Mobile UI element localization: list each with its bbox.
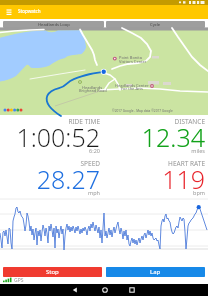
staticText: Headlands Center bbox=[115, 83, 149, 88]
staticText: HEART RATE bbox=[55, 159, 205, 168]
button[interactable]: Stop bbox=[3, 267, 102, 277]
button[interactable]: Back bbox=[70, 284, 80, 296]
button[interactable]: Headlands Loop bbox=[3, 21, 104, 28]
staticText: 6:20 bbox=[0, 147, 100, 154]
staticText: For the Arts bbox=[121, 86, 143, 91]
staticText: Cycle bbox=[150, 22, 161, 28]
staticText: 12.34 bbox=[55, 120, 205, 154]
staticText: Point Bonita bbox=[119, 55, 143, 60]
staticText: 1:00:52 bbox=[0, 120, 100, 154]
staticText: Headlands bbox=[82, 85, 103, 90]
button[interactable]: Home bbox=[100, 284, 110, 296]
staticText: ©2017 Google - Map data ©2017 Google bbox=[112, 109, 173, 113]
staticText: Visitors Center bbox=[119, 59, 147, 64]
staticText: Lap bbox=[150, 268, 161, 276]
staticText: 28.27 bbox=[0, 162, 100, 196]
button[interactable]: Cycle bbox=[106, 21, 205, 28]
button[interactable]: Navigation menu bbox=[5, 8, 13, 16]
staticText: Headlands Loop bbox=[38, 22, 70, 28]
staticText: RIDE TIME bbox=[0, 117, 100, 126]
staticText: mph bbox=[0, 189, 100, 196]
staticText: miles bbox=[55, 147, 205, 154]
staticText: bpm bbox=[55, 189, 205, 196]
staticText: SPEED bbox=[0, 159, 100, 168]
staticText: GPS bbox=[14, 277, 24, 284]
button[interactable]: Lap bbox=[106, 267, 205, 277]
staticText: Stop bbox=[46, 268, 59, 276]
button[interactable]: Recent apps bbox=[127, 284, 137, 296]
staticText: 119 bbox=[55, 162, 205, 196]
staticText: Brighead Road bbox=[79, 88, 107, 93]
staticText: DISTANCE bbox=[55, 117, 205, 126]
staticText: Stopwatch bbox=[18, 8, 41, 14]
